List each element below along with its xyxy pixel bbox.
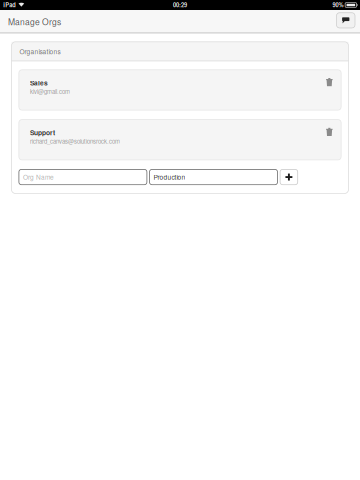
staticText: Production [153, 172, 185, 182]
button[interactable]: Add organisation [280, 169, 298, 185]
staticText: 90% [333, 1, 344, 9]
staticText: Manage Orgs [8, 15, 61, 28]
staticText: Organisations [19, 47, 60, 56]
staticText: 00:29 [173, 1, 187, 9]
button[interactable]: Delete Sales [326, 78, 333, 86]
staticText: Org Name [23, 172, 54, 182]
staticText: richard_canvas@solutionsrock.com [30, 137, 120, 145]
staticText: Support [30, 128, 55, 137]
staticText: kivi@gmail.com [30, 87, 70, 96]
staticText: Sales [30, 78, 48, 87]
button[interactable]: Delete Support [326, 128, 333, 136]
button[interactable]: Messages [336, 13, 355, 31]
staticText: iPad [3, 1, 16, 9]
